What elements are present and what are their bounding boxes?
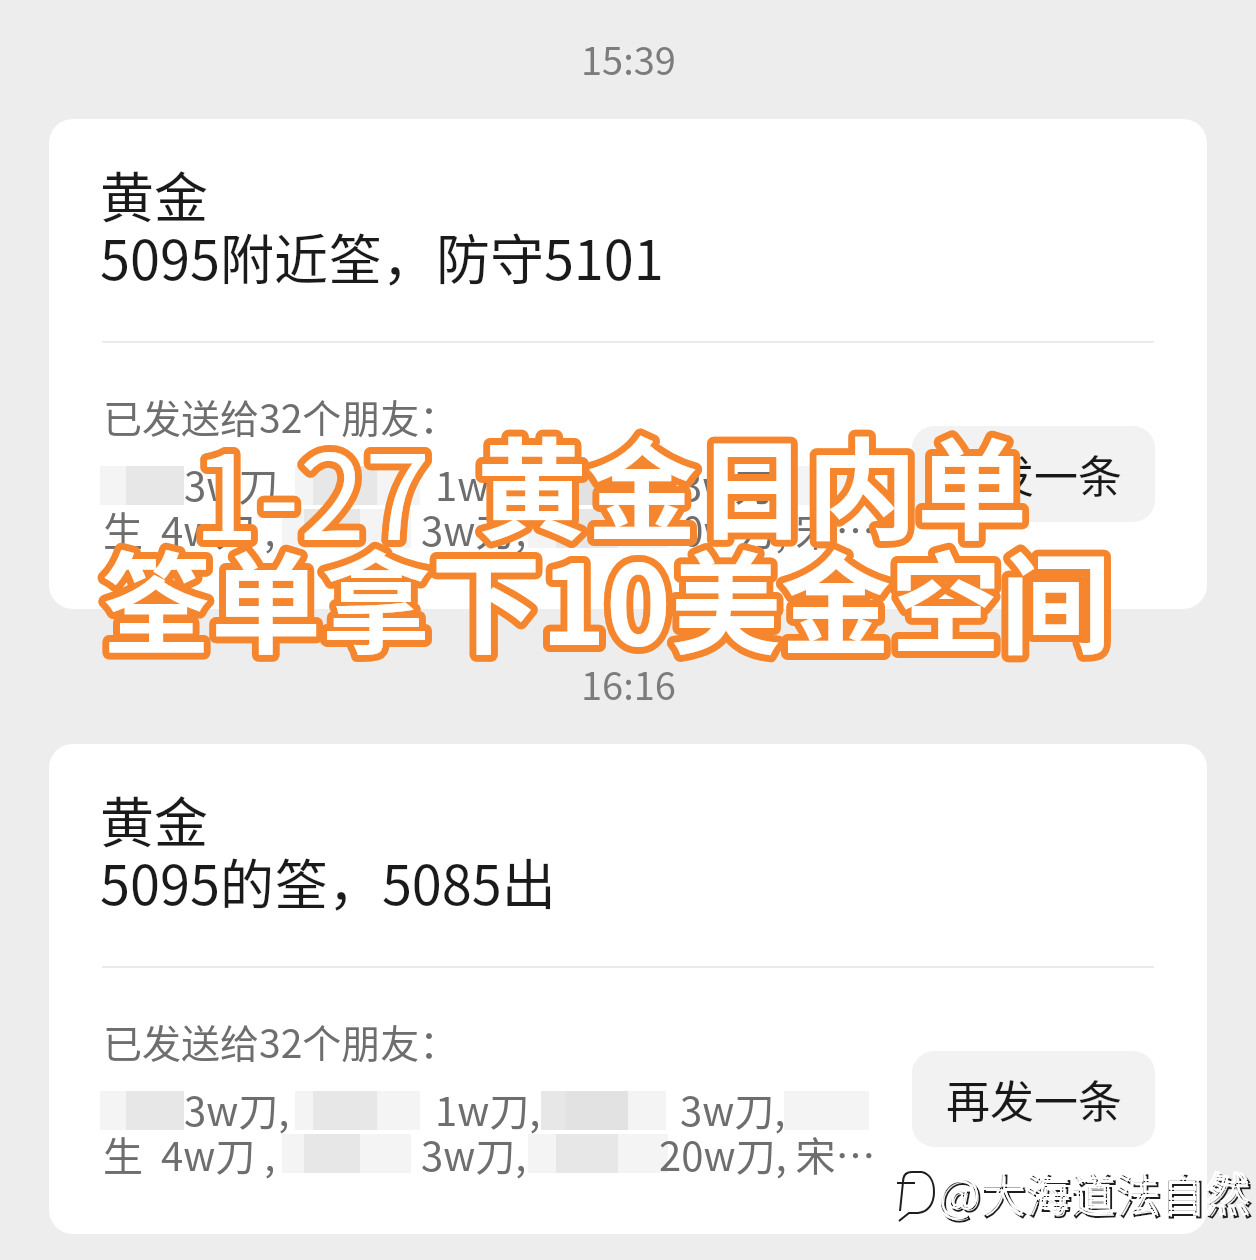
staticText: 20w刀, 宋…	[659, 1125, 876, 1183]
button[interactable]: 再发一条	[912, 426, 1155, 522]
staticText: 16:16	[581, 656, 676, 711]
staticText: 再发一条	[946, 1067, 1122, 1131]
staticText: 再发一条	[946, 442, 1122, 506]
staticText: 3w刀,	[184, 1080, 290, 1138]
staticText: 4w刀 ,	[161, 1125, 276, 1183]
staticText: 3w刀,	[680, 455, 786, 513]
staticText: 1w刀,	[435, 455, 541, 513]
staticText: 黄金 5095附近筌，防守5101	[100, 155, 664, 296]
staticText: 生	[103, 1125, 143, 1183]
button[interactable]: 黄金 5095的筌，5085出	[49, 744, 1207, 1234]
button[interactable]: 再发一条	[912, 1051, 1155, 1147]
staticText: 1w刀,	[435, 1080, 541, 1138]
staticText: 3w刀,	[421, 500, 527, 558]
staticText: 生	[103, 500, 143, 558]
staticText: 已发送给32个朋友：	[103, 388, 459, 444]
staticText: 3w刀,	[421, 1125, 527, 1183]
staticText: 黄金 5095的筌，5085出	[100, 780, 556, 921]
staticText: 20w刀, 宋…	[659, 500, 876, 558]
other: Author watermark	[0, 0, 1256, 1260]
button[interactable]: 黄金 5095附近筌，防守5101	[49, 119, 1207, 609]
staticText: 已发送给32个朋友：	[103, 1013, 459, 1069]
staticText: 3w刀,	[184, 455, 290, 513]
staticText: 15:39	[581, 31, 676, 86]
staticText: 3w刀,	[680, 1080, 786, 1138]
staticText: 4w刀 ,	[161, 500, 276, 558]
